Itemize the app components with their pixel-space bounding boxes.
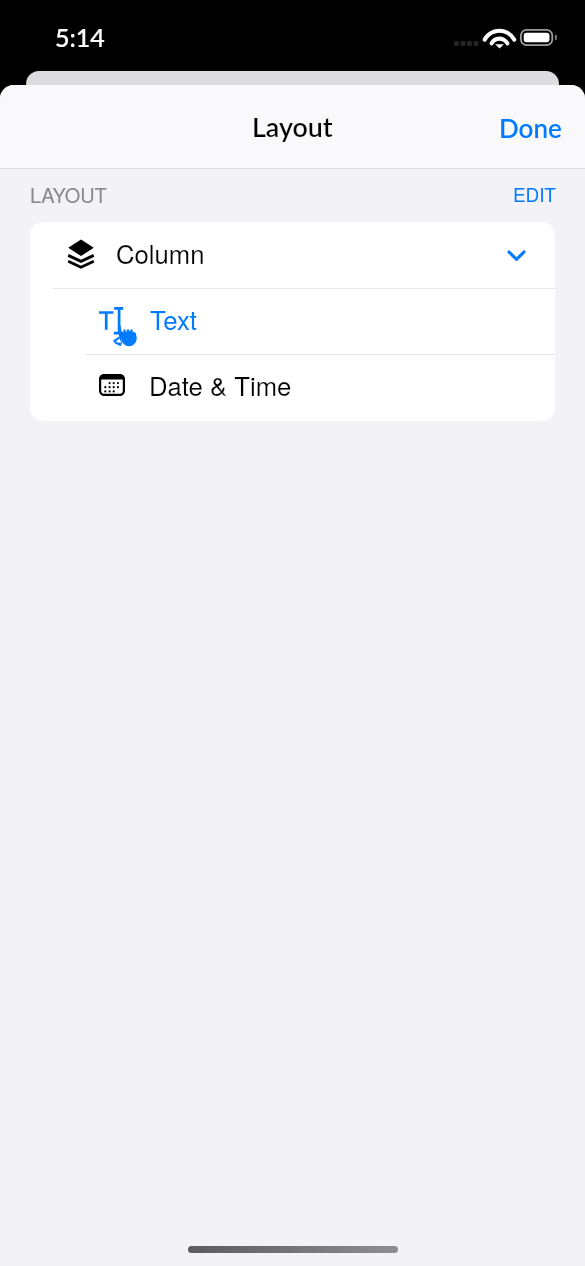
other: Collapse Column	[498, 237, 534, 273]
staticText: LAYOUT	[30, 180, 107, 209]
staticText: EDIT	[513, 180, 556, 207]
button[interactable]: Text	[30, 289, 555, 354]
button[interactable]: EDIT	[483, 174, 585, 213]
button[interactable]: Date & Time	[30, 355, 555, 421]
staticText: 5:14	[55, 22, 105, 52]
staticText: Date & Time	[149, 366, 292, 403]
button[interactable]: Column	[30, 222, 555, 288]
button[interactable]: Done	[469, 90, 585, 165]
staticText: Done	[499, 112, 562, 143]
staticText: Column	[116, 234, 205, 271]
staticText: Layout	[252, 111, 333, 143]
staticText: Text	[150, 300, 197, 337]
